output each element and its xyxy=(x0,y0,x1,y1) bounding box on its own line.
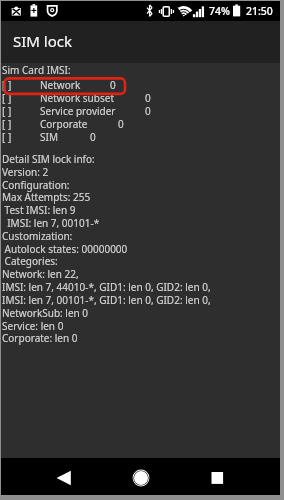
button[interactable]: SIM lock xyxy=(1,21,280,63)
staticText: [ ] xyxy=(2,117,12,130)
button[interactable]: [ ] xyxy=(1,78,280,91)
staticText: 0 xyxy=(145,91,151,104)
staticText: Service provider xyxy=(40,104,116,117)
staticText: SIM xyxy=(40,130,58,143)
staticText: Version: 2 xyxy=(2,165,49,179)
staticText: [ ] xyxy=(2,104,12,117)
staticText: Corporate: len 0 xyxy=(2,331,78,345)
staticText: [ ] xyxy=(2,130,12,143)
staticText: Sim Card IMSI: xyxy=(2,63,71,77)
staticText: Detail SIM lock info: xyxy=(2,152,95,166)
staticText: Configuration: xyxy=(2,178,70,192)
button[interactable]: [ ] xyxy=(1,117,280,130)
staticText: IMSI: len 7, 00101-*, GID1: len 0, GID2:… xyxy=(2,293,211,307)
button[interactable]: Recents xyxy=(187,458,280,495)
staticText: 0 xyxy=(118,117,124,130)
staticText: 0 xyxy=(110,78,116,91)
staticText: Network subset xyxy=(40,91,114,104)
staticText: Network: len 22, xyxy=(2,267,79,281)
button[interactable]: [ ] xyxy=(1,130,280,143)
staticText: Customization: xyxy=(2,229,73,243)
staticText: Max Attempts: 255 xyxy=(2,190,91,204)
staticText: Test IMSI: len 9 xyxy=(2,203,76,217)
staticText: NetworkSub: len 0 xyxy=(2,306,89,320)
staticText: Corporate xyxy=(40,117,88,130)
staticText: SIM lock xyxy=(13,31,72,51)
staticText: Categories: xyxy=(2,254,58,268)
staticText: 0 xyxy=(90,130,96,143)
staticText: Service: len 0 xyxy=(2,319,64,333)
staticText: 0 xyxy=(145,104,151,117)
staticText: 21:50 xyxy=(246,4,273,18)
staticText: IMSI: len 7, 00101-* xyxy=(2,216,100,230)
button[interactable]: Home xyxy=(94,458,187,495)
staticText: Network xyxy=(40,78,81,91)
staticText: [ ] xyxy=(2,78,12,91)
button[interactable]: [ ] xyxy=(1,104,280,117)
button[interactable]: [ ] xyxy=(1,91,280,104)
staticText: IMSI: len 7, 44010-*, GID1: len 0, GID2:… xyxy=(2,280,211,294)
button[interactable]: Back xyxy=(1,458,94,495)
staticText: 74% xyxy=(209,4,230,18)
staticText: Autolock states: 00000000 xyxy=(2,242,128,256)
staticText: [ ] xyxy=(2,91,12,104)
